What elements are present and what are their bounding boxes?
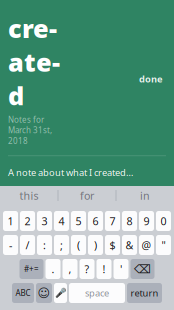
button[interactable]: ABC xyxy=(12,283,34,303)
staticText: 0 xyxy=(160,214,166,228)
staticText: & xyxy=(125,238,133,252)
staticText: 🎤 xyxy=(54,288,66,298)
button[interactable]: #+= xyxy=(19,259,43,279)
button[interactable]: 3 xyxy=(37,211,52,231)
staticText: ; xyxy=(60,238,63,252)
button[interactable]: for xyxy=(58,185,115,206)
staticText: 8 xyxy=(126,214,132,228)
staticText: 2 xyxy=(24,214,30,228)
staticText: 9 xyxy=(143,214,149,228)
staticText: ) xyxy=(94,238,97,252)
staticText: ' xyxy=(120,262,122,276)
staticText: Notes for March 31st, 2018 xyxy=(8,114,52,146)
button[interactable]: 0 xyxy=(156,211,171,231)
staticText: : xyxy=(43,238,46,252)
button[interactable]: ? xyxy=(79,259,94,279)
staticText: 6 xyxy=(92,214,98,228)
staticText: ( xyxy=(77,238,80,252)
button[interactable]: 4 xyxy=(54,211,69,231)
button[interactable]: 1 xyxy=(3,211,18,231)
staticText: 1 xyxy=(7,214,13,228)
staticText: - xyxy=(9,238,12,252)
button[interactable]: @ xyxy=(139,235,154,255)
staticText: this xyxy=(19,188,38,203)
staticText: $ xyxy=(109,238,115,252)
button[interactable]: / xyxy=(20,235,35,255)
button[interactable]: Delete xyxy=(130,259,154,279)
button[interactable]: ' xyxy=(113,259,128,279)
button[interactable]: 2 xyxy=(20,211,35,231)
button[interactable]: Emoji xyxy=(36,283,52,303)
button[interactable]: & xyxy=(122,235,137,255)
button[interactable]: 8 xyxy=(122,211,137,231)
button[interactable]: - xyxy=(3,235,18,255)
staticText: created xyxy=(8,11,60,112)
button[interactable]: ) xyxy=(88,235,103,255)
staticText: 4 xyxy=(58,214,64,228)
staticText: #+= xyxy=(24,264,39,274)
staticText: , xyxy=(68,262,71,276)
staticText: 3 xyxy=(41,214,47,228)
button[interactable]: : xyxy=(37,235,52,255)
staticText: ☺ xyxy=(37,286,50,300)
button[interactable]: ; xyxy=(54,235,69,255)
staticText: done xyxy=(139,73,163,85)
button[interactable]: . xyxy=(45,259,60,279)
button[interactable]: done xyxy=(136,70,166,88)
button[interactable]: 6 xyxy=(88,211,103,231)
button[interactable]: " xyxy=(156,235,171,255)
staticText: ! xyxy=(102,262,105,276)
button[interactable]: ! xyxy=(96,259,111,279)
button[interactable]: Dictation xyxy=(54,283,67,303)
staticText: / xyxy=(25,238,29,252)
button[interactable]: in xyxy=(116,185,173,206)
button[interactable]: return xyxy=(127,283,162,303)
button[interactable]: 7 xyxy=(105,211,120,231)
staticText: A note about what I created… xyxy=(8,166,133,179)
staticText: space xyxy=(85,287,109,299)
staticText: ABC xyxy=(15,288,30,298)
staticText: 5 xyxy=(75,214,81,228)
staticText: . xyxy=(51,262,54,276)
button[interactable]: 5 xyxy=(71,211,86,231)
button[interactable]: ( xyxy=(71,235,86,255)
button[interactable]: $ xyxy=(105,235,120,255)
staticText: in xyxy=(140,188,150,203)
button[interactable]: , xyxy=(62,259,77,279)
staticText: 7 xyxy=(109,214,115,228)
button[interactable]: space xyxy=(69,283,125,303)
staticText: " xyxy=(161,238,165,252)
staticText: return xyxy=(130,287,158,299)
button[interactable]: this xyxy=(0,185,57,206)
button[interactable]: 9 xyxy=(139,211,154,231)
staticText: @ xyxy=(141,238,151,252)
staticText: ? xyxy=(84,262,89,276)
staticText: ⌫ xyxy=(134,262,151,276)
staticText: for xyxy=(80,188,94,203)
